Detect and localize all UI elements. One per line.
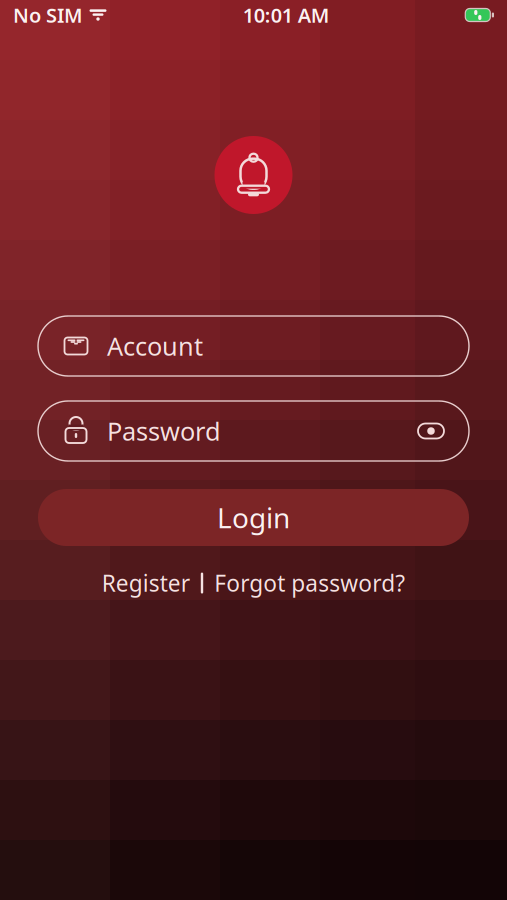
staticText: Login <box>217 499 290 536</box>
button[interactable]: Register <box>91 561 201 605</box>
staticText: Forgot password? <box>214 568 405 598</box>
button[interactable]: Forgot password? <box>203 561 416 605</box>
staticText: Account <box>107 329 203 363</box>
staticText: Register <box>102 568 190 598</box>
staticText: No SIM <box>13 2 83 28</box>
button[interactable]: Account <box>38 316 469 376</box>
button[interactable]: Login <box>38 489 469 546</box>
staticText: 10:01 AM <box>243 2 330 28</box>
button[interactable]: Show password <box>417 418 445 444</box>
button[interactable]: Password <box>38 401 469 461</box>
staticText: Password <box>107 414 221 448</box>
